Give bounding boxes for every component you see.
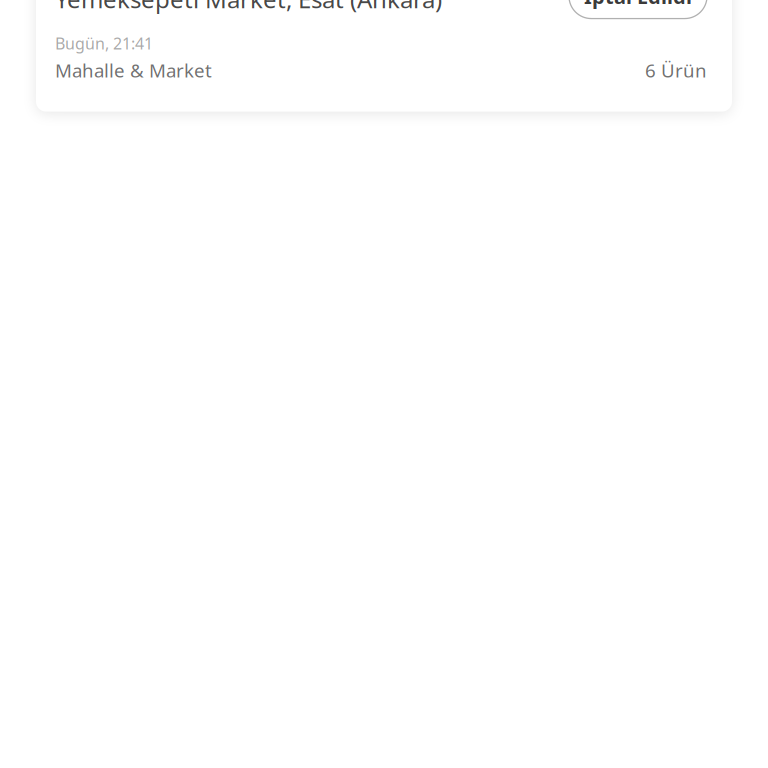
staticText: Mahalle & Market bbox=[55, 58, 212, 83]
staticText: 6 Ürün bbox=[645, 58, 707, 83]
staticText: İptal Edildi bbox=[584, 0, 692, 10]
staticText: Yemeksepeti Market, Esat (Ankara) bbox=[55, 0, 442, 15]
button[interactable]: Yemeksepeti Market, Esat (Ankara) bbox=[36, 0, 732, 112]
staticText: Bugün, 21:41 bbox=[55, 33, 153, 54]
